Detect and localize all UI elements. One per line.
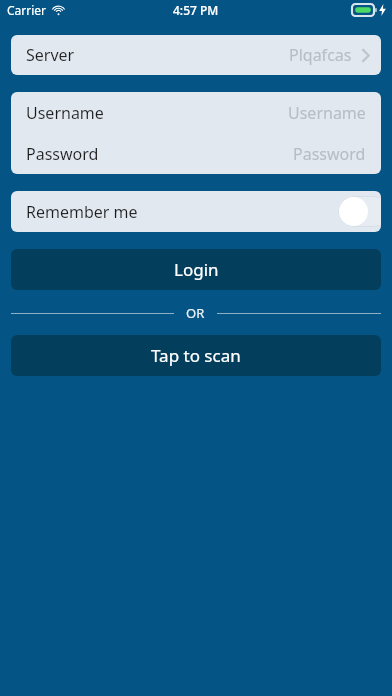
button[interactable]: Login bbox=[11, 249, 381, 290]
staticText: 4:57 PM bbox=[173, 2, 219, 18]
staticText: Login bbox=[174, 258, 219, 281]
other: Choose server bbox=[361, 48, 370, 63]
staticText: Tap to scan bbox=[151, 344, 241, 367]
staticText: Username bbox=[288, 102, 366, 124]
staticText: Password bbox=[26, 143, 99, 165]
staticText: Password bbox=[293, 143, 366, 165]
button[interactable]: Username bbox=[11, 92, 381, 133]
button[interactable]: Server bbox=[11, 35, 381, 75]
button[interactable]: Remember me toggle bbox=[338, 196, 381, 227]
staticText: Username bbox=[26, 102, 104, 124]
button[interactable]: Remember me bbox=[11, 191, 381, 232]
staticText: Server bbox=[26, 44, 75, 66]
staticText: Plqafcas bbox=[289, 44, 352, 66]
staticText: Remember me bbox=[26, 201, 138, 223]
button[interactable]: Password bbox=[11, 133, 381, 174]
staticText: OR bbox=[186, 304, 205, 322]
staticText: Carrier bbox=[7, 2, 47, 18]
button[interactable]: Tap to scan bbox=[11, 335, 381, 376]
